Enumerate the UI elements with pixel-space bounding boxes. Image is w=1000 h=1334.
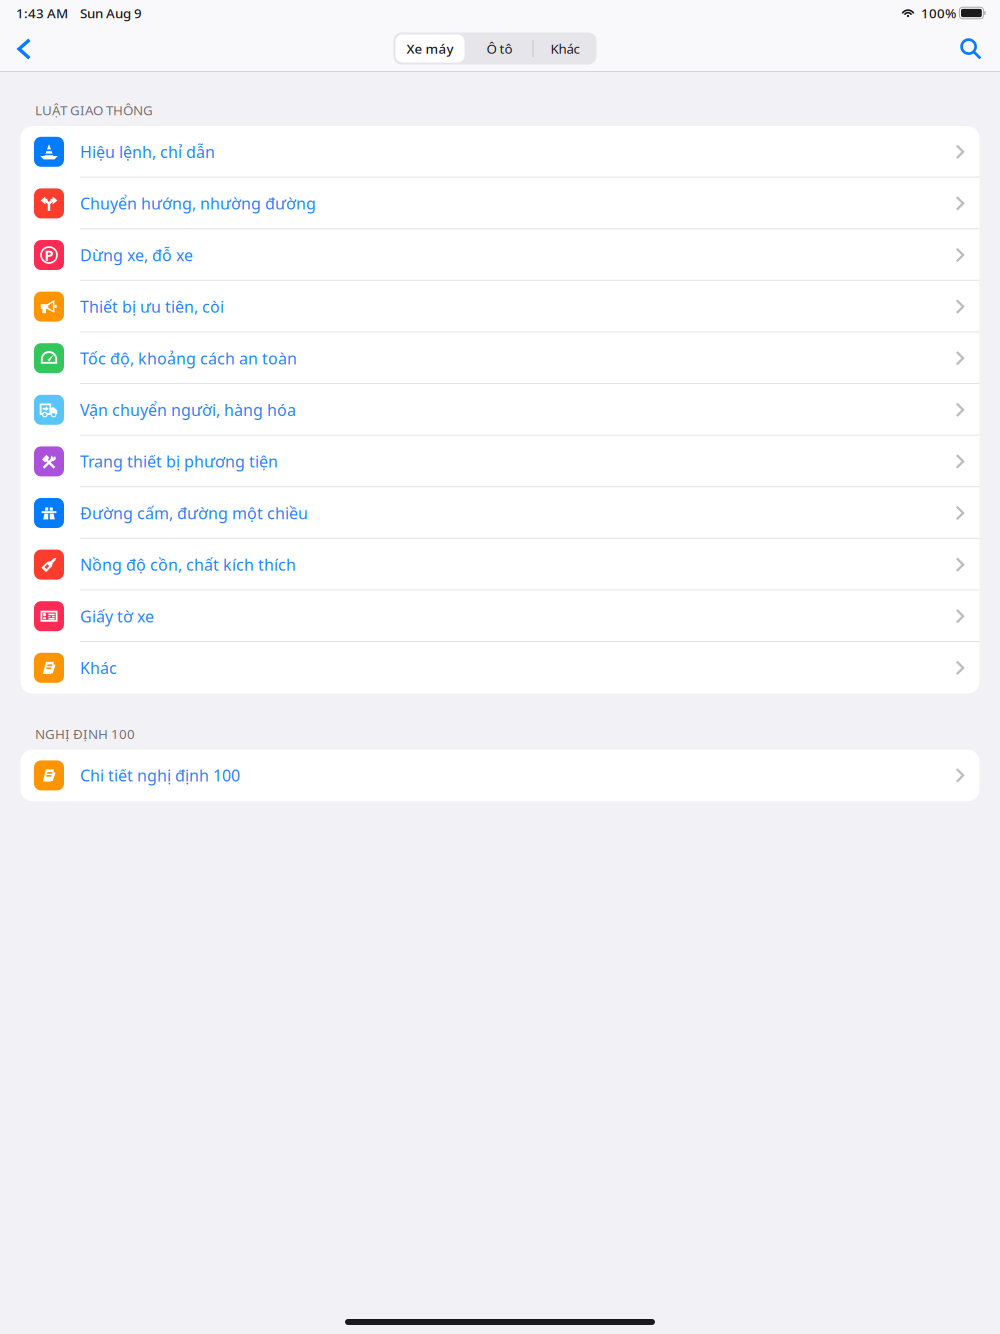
- button[interactable]: Hiệu lệnh, chỉ dẫn: [20, 126, 979, 178]
- button[interactable]: Ô tô: [466, 32, 532, 64]
- staticText: Sun Aug 9: [80, 4, 142, 22]
- button[interactable]: Chi tiết nghị định 100: [20, 750, 979, 801]
- staticText: Nồng độ cồn, chất kích thích: [80, 554, 296, 575]
- staticText: LUẬT GIAO THÔNG: [35, 101, 153, 119]
- button[interactable]: Chuyển hướng, nhường đường: [20, 178, 979, 229]
- staticText: Trang thiết bị phương tiện: [80, 451, 278, 472]
- button[interactable]: Back: [6, 26, 42, 72]
- button[interactable]: Vận chuyển người, hàng hóa: [20, 384, 979, 436]
- staticText: Khác: [80, 657, 117, 678]
- staticText: Xe máy: [406, 40, 453, 57]
- staticText: NGHỊ ĐỊNH 100: [35, 725, 135, 743]
- staticText: Ô tô: [486, 40, 512, 57]
- staticText: Chi tiết nghị định 100: [80, 765, 240, 786]
- button[interactable]: P: [20, 229, 979, 281]
- button[interactable]: Trang thiết bị phương tiện: [20, 436, 979, 487]
- staticText: Thiết bị ưu tiên, còi: [80, 296, 224, 317]
- staticText: 100%: [921, 4, 956, 22]
- button[interactable]: Khác: [20, 642, 979, 694]
- button[interactable]: Nồng độ cồn, chất kích thích: [20, 539, 979, 590]
- staticText: P: [44, 245, 53, 265]
- staticText: Dừng xe, đỗ xe: [80, 244, 193, 266]
- staticText: Khác: [550, 40, 579, 57]
- button[interactable]: Giấy tờ xe: [20, 590, 979, 642]
- staticText: Đường cấm, đường một chiều: [80, 502, 308, 524]
- button[interactable]: Khác: [533, 32, 596, 64]
- button[interactable]: Xe máy: [393, 32, 466, 64]
- staticText: Chuyển hướng, nhường đường: [80, 193, 316, 214]
- staticText: 1:43 AM: [16, 4, 68, 22]
- staticText: Giấy tờ xe: [80, 606, 154, 627]
- button[interactable]: Đường cấm, đường một chiều: [20, 487, 979, 539]
- staticText: Tốc độ, khoảng cách an toàn: [80, 348, 297, 369]
- staticText: Hiệu lệnh, chỉ dẫn: [80, 141, 215, 162]
- staticText: Vận chuyển người, hàng hóa: [80, 399, 296, 420]
- button[interactable]: Thiết bị ưu tiên, còi: [20, 281, 979, 332]
- button[interactable]: Tốc độ, khoảng cách an toàn: [20, 332, 979, 384]
- button[interactable]: Search: [948, 26, 994, 72]
